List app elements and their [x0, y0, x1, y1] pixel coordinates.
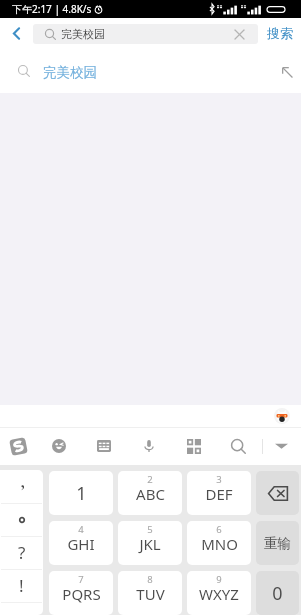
staticText: 完美校园: [61, 27, 105, 41]
staticText: 3: [216, 473, 222, 486]
staticText: 4: [78, 523, 84, 536]
staticText: 搜索: [267, 25, 293, 41]
button[interactable]: Voice input: [134, 430, 164, 462]
button[interactable]: ?: [0, 536, 43, 569]
button[interactable]: 5: [118, 521, 182, 565]
button[interactable]: Use suggestion: [277, 62, 298, 83]
staticText: 重输: [264, 535, 291, 552]
staticText: TUV: [136, 584, 165, 604]
other: Voice input: [142, 439, 156, 453]
button[interactable]: [0, 602, 43, 615]
staticText: PQRS: [62, 584, 101, 604]
button[interactable]: 搜索: [258, 18, 301, 48]
other: Search: [231, 439, 246, 454]
staticText: ABC: [136, 484, 165, 504]
staticText: 8: [147, 573, 153, 586]
button[interactable]: 重输: [256, 521, 299, 565]
button[interactable]: [0, 470, 43, 503]
button[interactable]: 1: [49, 471, 113, 515]
staticText: !: [19, 574, 24, 597]
other: Backspace: [268, 486, 288, 501]
button[interactable]: 完美校园: [0, 48, 301, 93]
button[interactable]: 9: [187, 571, 251, 615]
staticText: DEF: [205, 484, 233, 504]
other: Input method: [8, 436, 29, 457]
button[interactable]: !: [0, 569, 43, 602]
button[interactable]: 4: [49, 521, 113, 565]
other: More functions: [187, 439, 201, 454]
button[interactable]: More functions: [179, 430, 209, 462]
other: Hide keyboard: [275, 442, 288, 450]
button[interactable]: Emoji: [44, 430, 74, 462]
other: Keyboard layout: [97, 440, 111, 452]
staticText: 2: [147, 473, 153, 486]
other: Emoji: [52, 439, 66, 453]
staticText: GHI: [67, 534, 95, 554]
button[interactable]: 3: [187, 471, 251, 515]
staticText: 5: [147, 523, 153, 536]
button[interactable]: Back: [0, 18, 33, 48]
staticText: 6: [216, 523, 222, 536]
staticText: WXYZ: [199, 584, 239, 604]
button[interactable]: 8: [118, 571, 182, 615]
button[interactable]: Hide keyboard: [266, 430, 296, 462]
button[interactable]: Backspace: [256, 471, 299, 515]
button[interactable]: 7: [49, 571, 113, 615]
staticText: 7: [78, 573, 84, 586]
staticText: ?: [18, 541, 26, 564]
staticText: 完美校园: [43, 64, 97, 81]
staticText: 0: [272, 581, 283, 606]
button[interactable]: [0, 503, 43, 536]
staticText: MNO: [201, 534, 238, 554]
button[interactable]: Search: [223, 430, 253, 462]
button[interactable]: Clear text: [229, 24, 249, 44]
button[interactable]: 6: [187, 521, 251, 565]
button[interactable]: Keyboard layout: [89, 430, 119, 462]
button[interactable]: 0: [256, 571, 299, 615]
button[interactable]: 完美校园: [33, 24, 258, 44]
staticText: 1: [76, 481, 87, 506]
staticText: 下午2:17 | 4.8K/s: [12, 2, 92, 16]
button[interactable]: Sticker shortcut: [274, 408, 290, 424]
button[interactable]: Input method: [3, 430, 33, 462]
button[interactable]: 2: [118, 471, 182, 515]
staticText: JKL: [139, 534, 161, 554]
staticText: 9: [216, 573, 222, 586]
